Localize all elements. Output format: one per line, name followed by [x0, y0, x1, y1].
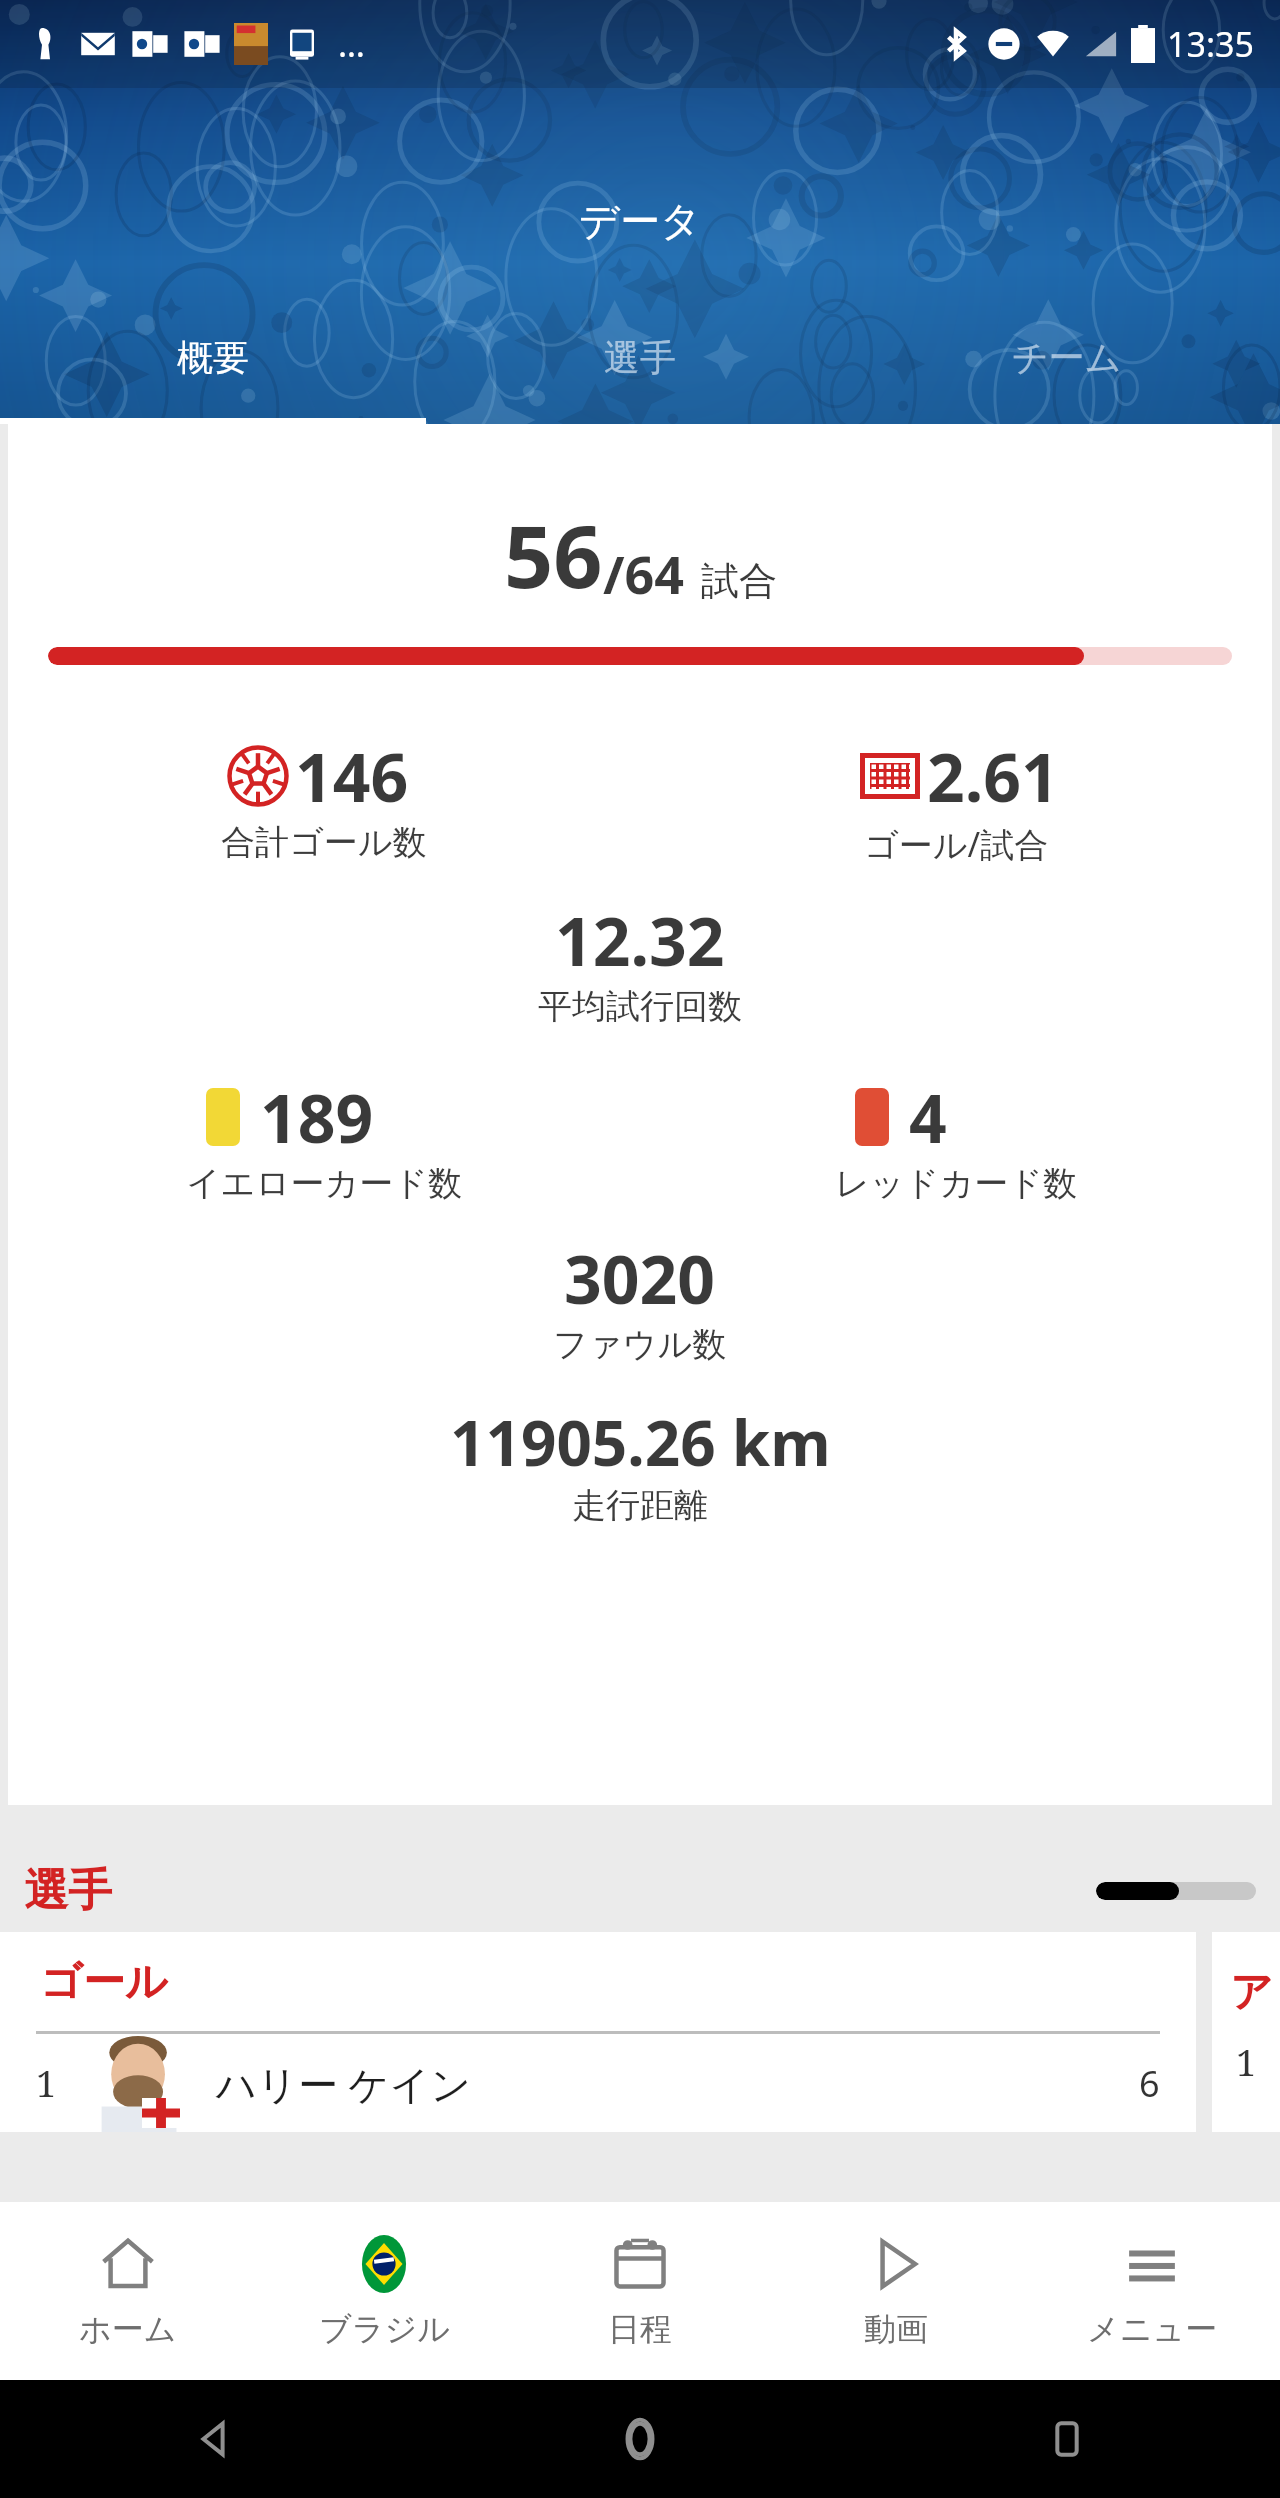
staticText: チーム: [1012, 335, 1122, 380]
staticText: 6: [1139, 2059, 1160, 2108]
staticText: メニュー: [1087, 2309, 1218, 2349]
other: Recents: [1045, 2417, 1089, 2461]
button[interactable]: Goals per match: [640, 731, 1272, 867]
staticText: /64: [603, 538, 685, 609]
button[interactable]: Card: [8, 1072, 640, 1205]
staticText: データ: [579, 196, 701, 246]
other: Videos: [868, 2236, 924, 2292]
button[interactable]: Menu: [1024, 2202, 1280, 2380]
staticText: 選手: [24, 1863, 112, 1918]
staticText: 概要: [177, 335, 249, 380]
other: Schedule: [612, 2236, 668, 2292]
staticText: 選手: [604, 335, 676, 380]
staticText: 合計ゴール数: [221, 821, 427, 864]
button[interactable]: Goals: [8, 731, 640, 864]
other: Home: [99, 2235, 157, 2293]
staticText: 走行距離: [572, 1484, 708, 1527]
staticText: …: [338, 21, 365, 67]
staticText: 3020: [564, 1233, 716, 1323]
button[interactable]: Card: [640, 1072, 1272, 1205]
other: Home: [616, 2415, 664, 2463]
staticText: 1: [36, 2059, 92, 2108]
other: Menu: [1126, 2238, 1178, 2290]
staticText: 11905.26 km: [450, 1400, 831, 1484]
staticText: イエローカード数: [186, 1162, 462, 1205]
staticText: ホーム: [79, 2309, 177, 2349]
button[interactable]: 11905.26 km: [8, 1400, 1272, 1527]
staticText: 日程: [608, 2309, 672, 2349]
staticText: ブラジル: [319, 2309, 450, 2349]
other: Brazil: [355, 2235, 413, 2293]
other: Goals: [227, 745, 289, 807]
button[interactable]: チーム: [853, 304, 1280, 424]
staticText: ファウル数: [553, 1323, 727, 1366]
other: Back: [189, 2415, 237, 2463]
staticText: 2.61: [927, 731, 1059, 821]
staticText: 平均試行回数: [538, 985, 742, 1028]
staticText: 12.32: [555, 895, 725, 985]
staticText: 動画: [864, 2309, 928, 2349]
other: Card: [855, 1088, 889, 1146]
button[interactable]: 3020: [8, 1233, 1272, 1366]
staticText: ア: [1230, 1966, 1273, 2019]
button[interactable]: Brazil: [256, 2202, 512, 2380]
button[interactable]: 概要: [0, 304, 426, 424]
staticText: ゴール/試合: [864, 821, 1049, 867]
staticText: 146: [295, 731, 409, 821]
other: Goals per match: [860, 753, 920, 799]
other: Card: [206, 1088, 240, 1146]
staticText: ゴール: [40, 1956, 168, 2009]
button[interactable]: 選手: [426, 304, 853, 424]
button[interactable]: ゴール: [0, 1932, 1196, 2132]
staticText: 13:35: [1167, 21, 1254, 67]
staticText: 1: [1236, 2038, 1257, 2087]
staticText: 試合: [701, 557, 777, 605]
button[interactable]: Home: [0, 2202, 256, 2380]
staticText: 189: [260, 1072, 374, 1162]
button[interactable]: Schedule: [512, 2202, 768, 2380]
button[interactable]: 12.32: [8, 895, 1272, 1028]
button[interactable]: Videos: [768, 2202, 1024, 2380]
staticText: 4: [909, 1072, 947, 1162]
staticText: レッドカード数: [835, 1162, 1077, 1205]
staticText: ハリー ケイン: [216, 2056, 472, 2111]
staticText: 56: [504, 496, 603, 613]
